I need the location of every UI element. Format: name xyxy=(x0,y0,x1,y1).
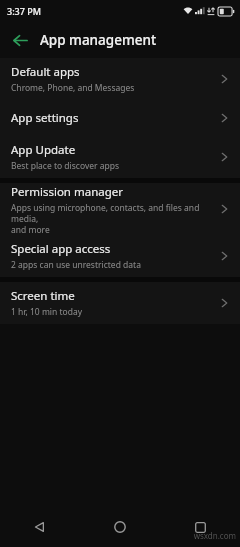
staticText: Chrome, Phone, and Messages xyxy=(11,82,135,94)
button[interactable]: App settings xyxy=(0,100,240,136)
button[interactable]: App Update xyxy=(0,136,240,178)
button[interactable]: Default apps xyxy=(0,58,240,100)
button[interactable]: Home xyxy=(80,507,160,547)
staticText: Screen time xyxy=(11,288,75,304)
staticText: wsxdn.com xyxy=(193,530,236,541)
staticText: 1 hr, 10 min today xyxy=(11,306,83,318)
button[interactable]: Special app access xyxy=(0,235,240,277)
button[interactable]: Screen time xyxy=(0,282,240,324)
button[interactable]: Back xyxy=(0,507,80,547)
staticText: App management xyxy=(40,31,157,49)
staticText: 3:37 PM xyxy=(7,5,41,17)
button[interactable]: Recents xyxy=(160,507,240,547)
staticText: App Update xyxy=(11,142,76,158)
staticText: Permission manager xyxy=(11,184,124,200)
staticText: Best place to discover apps xyxy=(11,160,120,172)
button[interactable]: Back xyxy=(6,26,34,54)
staticText: App settings xyxy=(11,110,79,126)
staticText: Apps using microphone, contacts, and fil… xyxy=(11,202,212,235)
staticText: Default apps xyxy=(11,64,80,80)
staticText: Special app access xyxy=(11,241,111,257)
staticText: 2 apps can use unrestricted data xyxy=(11,259,141,271)
button[interactable]: Permission manager xyxy=(0,183,240,235)
